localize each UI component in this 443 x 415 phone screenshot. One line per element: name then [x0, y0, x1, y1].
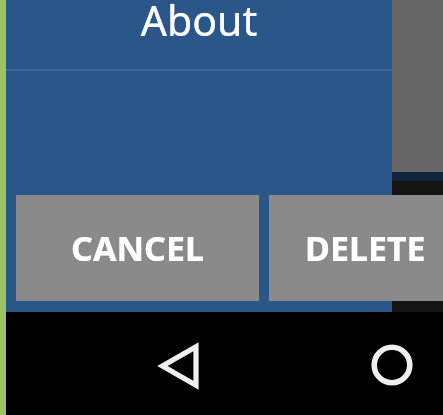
staticText: DELETE	[305, 225, 426, 271]
button[interactable]: Home	[365, 338, 419, 392]
button[interactable]: Back	[152, 340, 208, 392]
button[interactable]: CANCEL	[16, 195, 259, 301]
staticText: About	[6, 0, 392, 48]
button[interactable]: DELETE	[269, 195, 443, 301]
staticText: CANCEL	[71, 225, 204, 271]
